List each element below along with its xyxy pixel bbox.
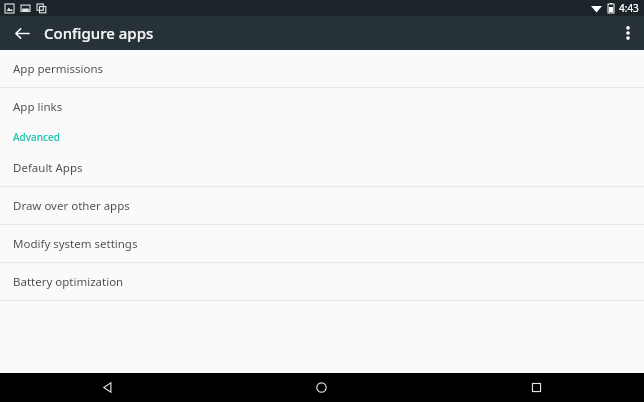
- button[interactable]: Battery optimization: [0, 263, 644, 300]
- staticText: Default Apps: [13, 160, 83, 176]
- staticText: App permissions: [13, 61, 104, 77]
- staticText: App links: [13, 99, 63, 115]
- staticText: Modify system settings: [13, 236, 138, 252]
- button[interactable]: Navigate up: [0, 16, 44, 50]
- button[interactable]: App links: [0, 88, 644, 125]
- button[interactable]: App permissions: [0, 50, 644, 87]
- button[interactable]: Modify system settings: [0, 225, 644, 262]
- button[interactable]: More options: [612, 16, 644, 50]
- staticText: Advanced: [13, 130, 60, 144]
- button[interactable]: Default Apps: [0, 149, 644, 186]
- staticText: Configure apps: [44, 23, 154, 43]
- button[interactable]: Back: [0, 373, 214, 402]
- button[interactable]: Recent apps: [429, 373, 644, 402]
- staticText: Draw over other apps: [13, 198, 130, 214]
- button[interactable]: Draw over other apps: [0, 187, 644, 224]
- staticText: Battery optimization: [13, 274, 124, 290]
- button[interactable]: Home: [214, 373, 429, 402]
- staticText: 4:43: [619, 1, 639, 15]
